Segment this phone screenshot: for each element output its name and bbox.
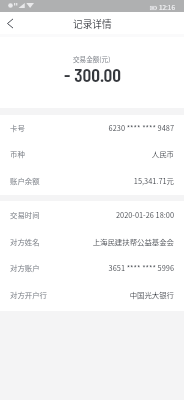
- staticText: 人民币: [151, 148, 174, 159]
- button[interactable]: 卡号: [0, 114, 184, 141]
- button[interactable]: 对方开户行: [0, 281, 184, 308]
- staticText: 交易时间: [10, 209, 40, 220]
- staticText: 12:16: [159, 3, 175, 12]
- staticText: 中国光大银行: [129, 289, 174, 300]
- staticText: 对方姓名: [10, 236, 40, 247]
- staticText: 币种: [10, 148, 25, 159]
- staticText: 交易金额(元): [73, 54, 111, 64]
- staticText: - 300.00: [64, 62, 121, 85]
- staticText: 卡号: [10, 122, 25, 133]
- button[interactable]: 对方账户: [0, 254, 184, 281]
- staticText: 3651 **** **** 5996: [108, 262, 174, 273]
- button[interactable]: 交易时间: [0, 201, 184, 228]
- staticText: 2020-01-26 18:00: [115, 209, 174, 220]
- staticText: 对方账户: [10, 262, 40, 273]
- button[interactable]: 对方姓名: [0, 228, 184, 255]
- staticText: 15,341.71元: [133, 175, 174, 186]
- staticText: 上海民建扶帮公益基金会: [92, 236, 174, 247]
- button[interactable]: 币种: [0, 140, 184, 167]
- staticText: 账户余额: [10, 175, 40, 186]
- staticText: 6230 **** **** 9487: [108, 122, 174, 133]
- button[interactable]: Back: [0, 12, 22, 34]
- staticText: 对方开户行: [10, 289, 47, 300]
- button[interactable]: 账户余额: [0, 167, 184, 194]
- staticText: 记录详情: [73, 17, 112, 31]
